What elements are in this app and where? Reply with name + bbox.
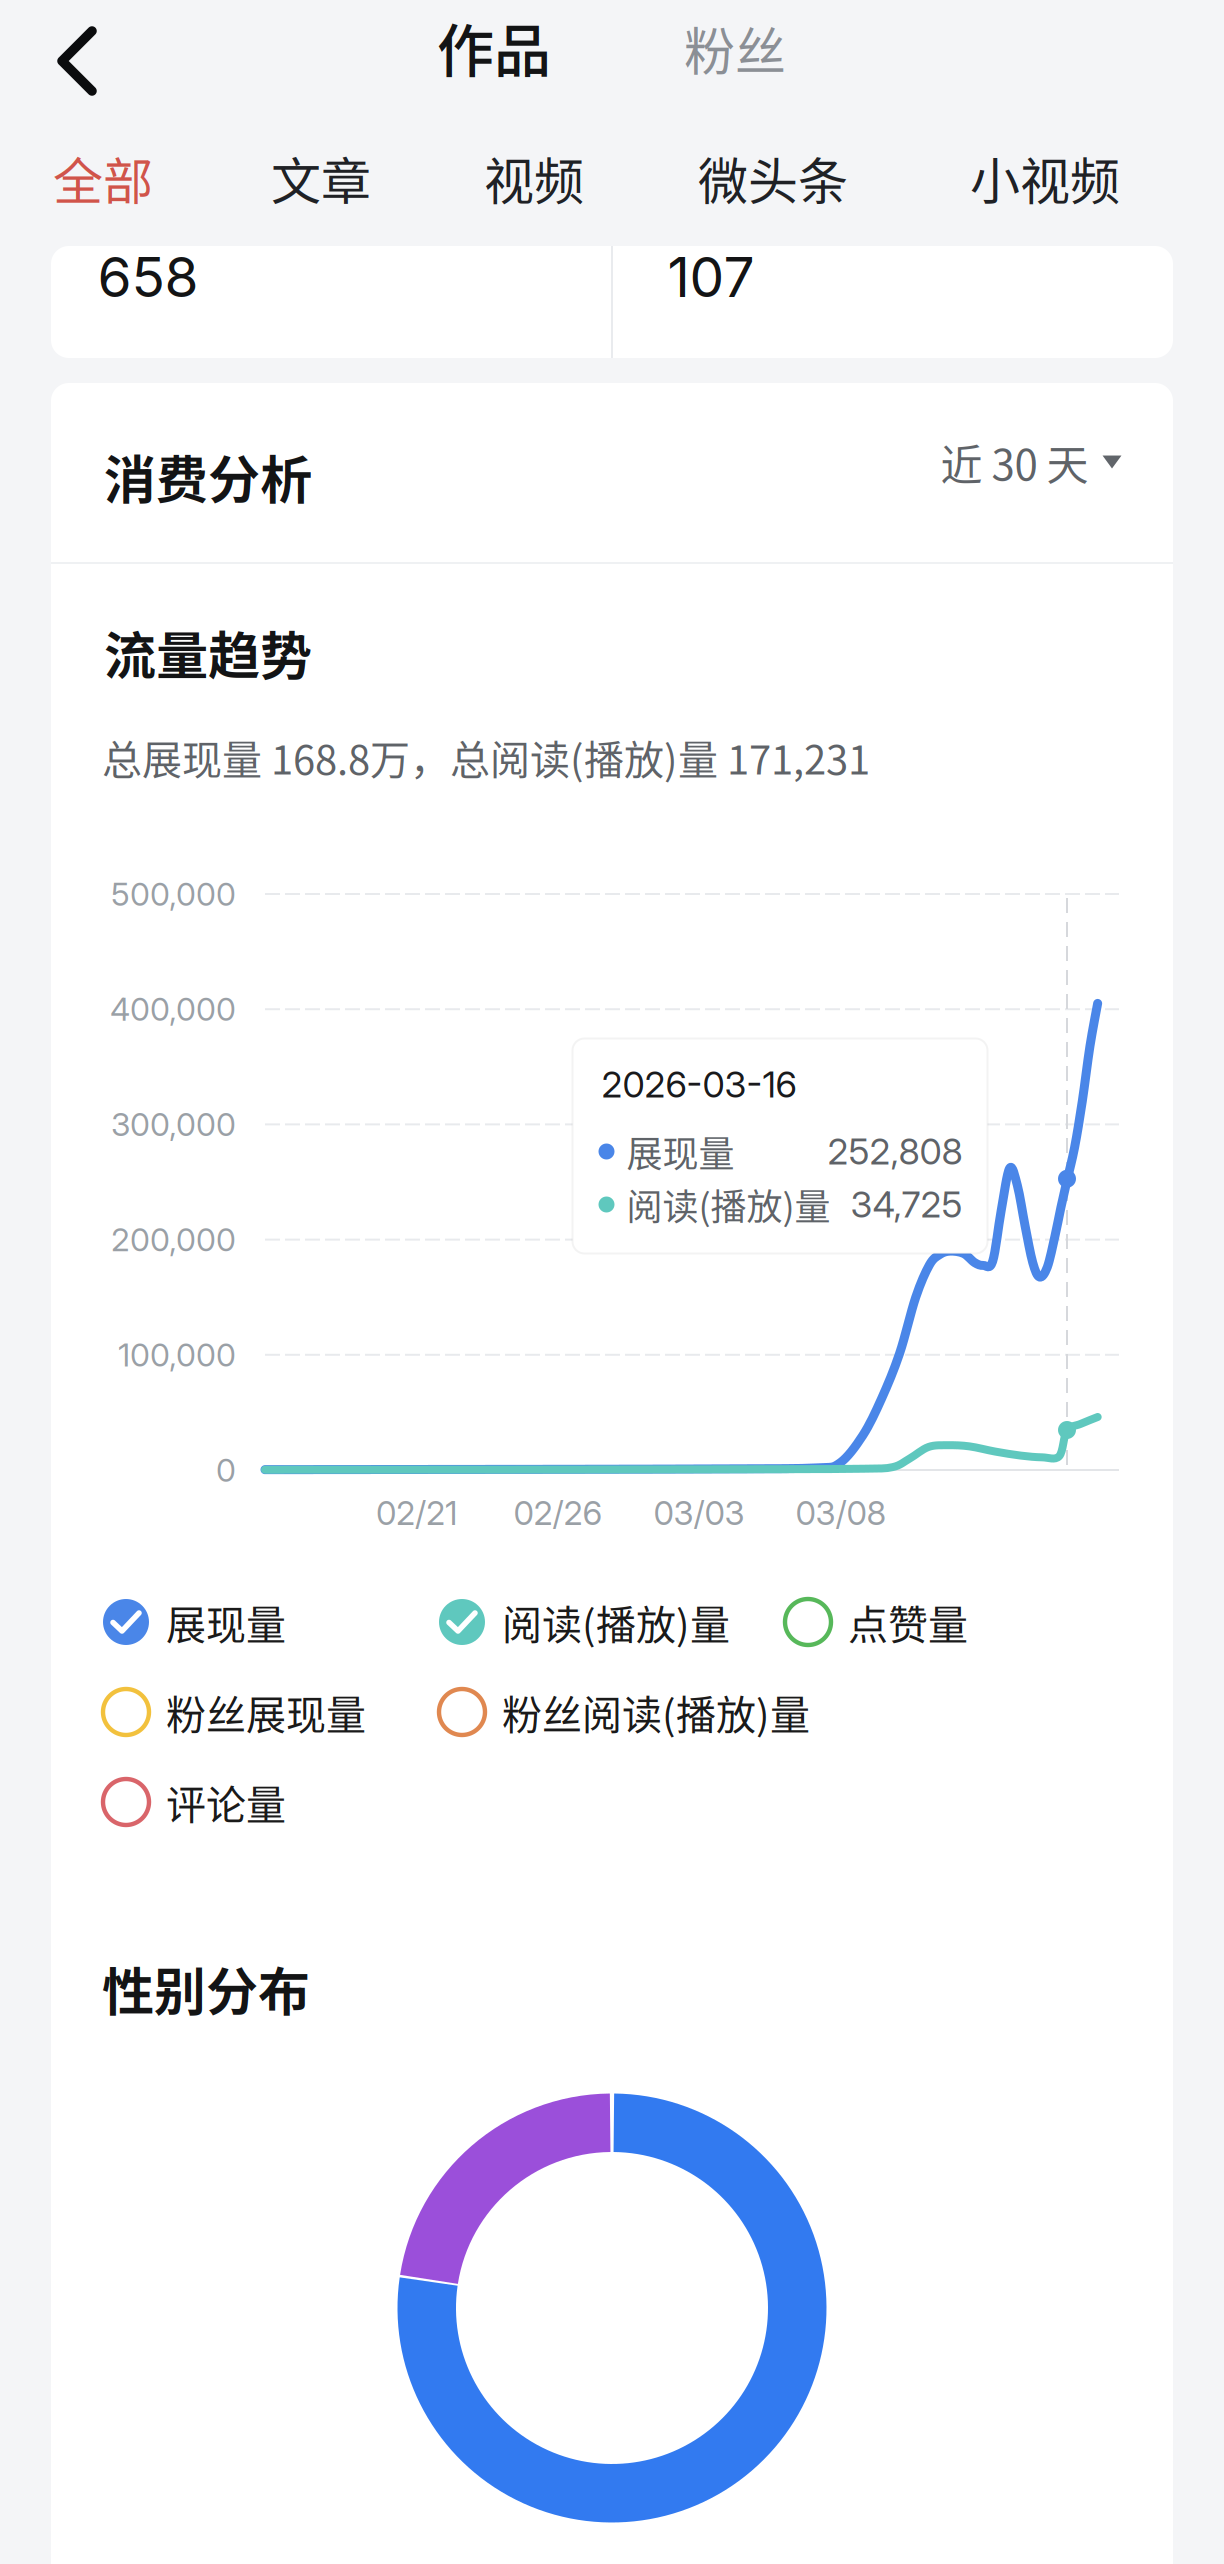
staticText: 性别分布 (102, 1950, 310, 2026)
staticText: 评论量 (166, 1773, 286, 1831)
button[interactable]: 返回 (17, 1, 137, 121)
staticText: 阅读(播放)量 (502, 1593, 730, 1651)
button[interactable]: 文章 (216, 126, 426, 230)
staticText: 微头条 (698, 142, 848, 214)
staticText: 34,725 (850, 1183, 962, 1226)
staticText: 消费分析 (104, 438, 312, 514)
staticText: 总展现量 168.8万，总阅读(播放)量 171,231 (102, 728, 870, 786)
button[interactable]: 阅读(播放)量 (439, 1583, 730, 1661)
staticText: 658 (97, 244, 198, 310)
button[interactable]: 视频 (429, 126, 639, 230)
staticText: 02/21 (376, 1493, 458, 1533)
staticText: 展现量 (166, 1593, 286, 1651)
staticText: 02/26 (513, 1493, 602, 1533)
button[interactable]: 点赞量 (785, 1583, 968, 1661)
button[interactable]: 小视频 (929, 126, 1161, 230)
staticText: 视频 (484, 142, 584, 214)
staticText: 03/03 (653, 1493, 744, 1533)
button[interactable]: 作品 (423, 0, 565, 102)
button[interactable]: 微头条 (657, 126, 889, 230)
staticText: 200,000 (111, 1220, 236, 1259)
button[interactable]: 粉丝 (670, 0, 800, 99)
staticText: 300,000 (111, 1105, 236, 1144)
button[interactable]: 近 30 天 (930, 422, 1131, 502)
button[interactable]: 评论量 (103, 1763, 286, 1841)
button[interactable]: 粉丝展现量 (103, 1673, 366, 1751)
staticText: 粉丝展现量 (166, 1683, 366, 1741)
staticText: 粉丝阅读(播放)量 (502, 1683, 810, 1741)
staticText: 作品 (437, 6, 551, 88)
staticText: 400,000 (110, 990, 236, 1028)
staticText: 展现量 (626, 1125, 734, 1177)
staticText: 2026-03-16 (601, 1063, 796, 1106)
staticText: 252,808 (827, 1130, 962, 1173)
staticText: 100,000 (118, 1335, 236, 1374)
staticText: 阅读(播放)量 (626, 1178, 830, 1230)
staticText: 粉丝 (684, 11, 786, 85)
staticText: 500,000 (111, 875, 236, 913)
staticText: 近 30 天 (940, 432, 1088, 492)
staticText: 全部 (53, 142, 153, 214)
button[interactable]: 粉丝阅读(播放)量 (439, 1673, 810, 1751)
staticText: 流量趋势 (104, 614, 312, 690)
staticText: 0 (216, 1451, 236, 1489)
staticText: 点赞量 (848, 1593, 968, 1651)
staticText: 文章 (271, 142, 371, 214)
staticText: 03/08 (795, 1493, 886, 1533)
staticText: 107 (667, 244, 754, 310)
staticText: 小视频 (970, 142, 1120, 214)
button[interactable]: 展现量 (103, 1583, 286, 1661)
button[interactable]: 全部 (0, 126, 206, 230)
